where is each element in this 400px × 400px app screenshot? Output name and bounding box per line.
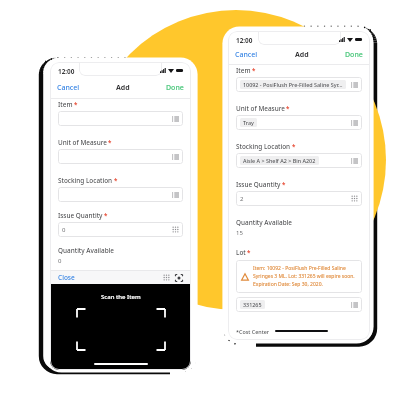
staticText: Quantity Available [58, 246, 115, 255]
staticText: 0 [58, 257, 62, 265]
staticText: * [286, 104, 290, 112]
button[interactable]: 10092 - PosiFlush Pre-Filled Saline Syr.… [236, 77, 362, 92]
staticText: Lot [236, 248, 246, 257]
staticText: * [292, 142, 296, 150]
staticText: Issue Quantity [58, 211, 103, 220]
staticText: Item: 10092 - PosiFlush Pre-Filled Salin… [253, 265, 357, 288]
staticText: 12:00 [236, 36, 253, 45]
button[interactable]: Cancel [235, 50, 258, 60]
button[interactable]: Keypad [163, 274, 170, 281]
staticText: Quantity Available [236, 218, 293, 227]
staticText: * [104, 211, 108, 219]
staticText: Add [116, 83, 130, 93]
button[interactable] [58, 111, 183, 126]
staticText: * [74, 100, 78, 108]
staticText: Unit of Measure [236, 104, 285, 113]
staticText: Done [345, 50, 363, 60]
button[interactable]: 331265 [236, 297, 362, 312]
button[interactable]: Aisle A > Shelf A2 > Bin A202 [236, 153, 362, 168]
staticText: Close [58, 273, 75, 282]
button[interactable]: 2 [236, 191, 362, 206]
staticText: Done [166, 83, 184, 93]
button[interactable]: Close [58, 271, 183, 284]
staticText: Stocking Location [236, 142, 291, 151]
staticText: 12:00 [58, 67, 75, 76]
staticText: Unit of Measure [58, 138, 107, 147]
button[interactable]: Done [345, 50, 363, 60]
staticText: Item [236, 66, 251, 75]
staticText: Issue Quantity [236, 180, 281, 189]
staticText: *Cost Center [236, 328, 270, 335]
button[interactable]: Tray [236, 115, 362, 130]
button[interactable]: 0 [58, 222, 183, 237]
staticText: Aisle A > Shelf A2 > Bin A202 [243, 157, 316, 164]
button[interactable] [58, 187, 183, 202]
staticText: Stocking Location [58, 176, 113, 185]
button[interactable] [58, 149, 183, 164]
staticText: * [108, 138, 112, 146]
staticText: 15 [236, 229, 243, 237]
staticText: * [247, 248, 251, 256]
staticText: 0 [62, 226, 66, 234]
staticText: 2 [240, 195, 244, 203]
staticText: 331265 [243, 301, 262, 308]
staticText: Scan the Item [101, 293, 141, 301]
staticText: Cancel [57, 83, 80, 93]
staticText: * [114, 176, 118, 184]
staticText: * [252, 66, 256, 74]
staticText: * [282, 180, 286, 188]
staticText: Cancel [235, 50, 258, 60]
staticText: Add [295, 50, 309, 60]
staticText: 10092 - PosiFlush Pre-Filled Saline Syr.… [243, 81, 343, 88]
button[interactable]: Done [166, 83, 184, 93]
staticText: Tray [243, 119, 254, 126]
button[interactable]: Cancel [57, 83, 80, 93]
button[interactable]: Scan [175, 274, 183, 282]
staticText: Item [58, 100, 73, 109]
